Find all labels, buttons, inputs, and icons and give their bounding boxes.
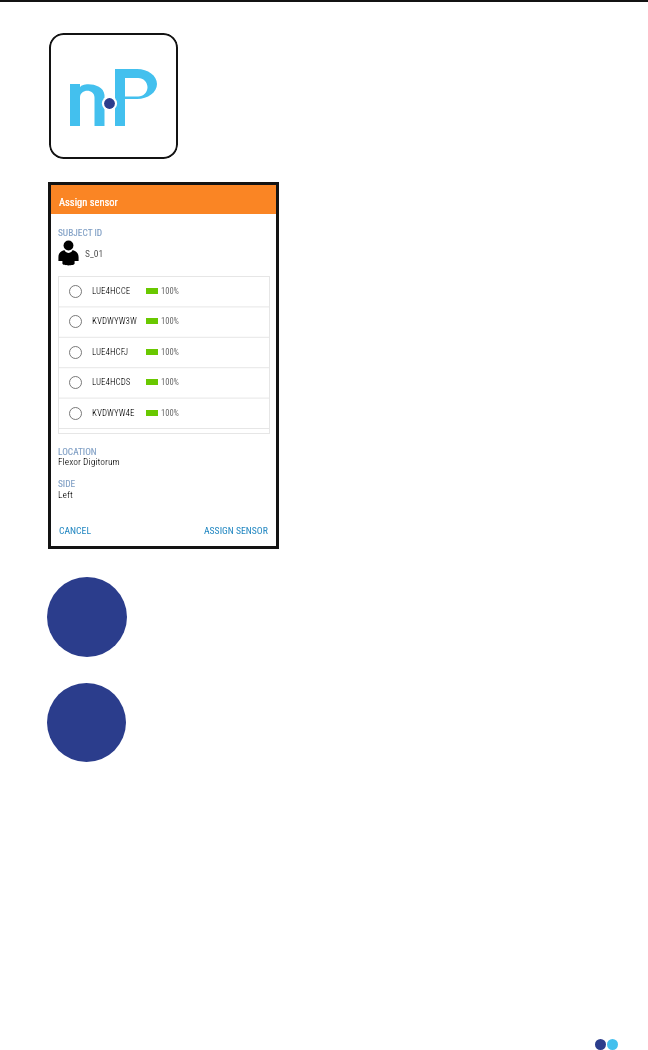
staticText: 100% — [161, 286, 179, 296]
button[interactable]: LUE4HCCE — [58, 276, 270, 306]
staticText: 100% — [161, 377, 179, 387]
button[interactable]: LUE4HCFJ — [58, 337, 270, 367]
staticText: 100% — [161, 347, 179, 357]
staticText: Flexor Digitorum — [58, 456, 120, 467]
staticText: ASSIGN SENSOR — [204, 525, 268, 536]
button[interactable]: KVDWYW4E — [58, 398, 270, 428]
staticText: LUE4HCCE — [92, 286, 131, 297]
staticText: KVDWYW4E — [92, 408, 135, 419]
staticText: LUE4HCFJ — [92, 347, 129, 358]
staticText: Assign sensor — [59, 196, 118, 208]
staticText: S_01 — [85, 248, 104, 259]
staticText: KVDWYW3W — [92, 316, 137, 327]
staticText: CANCEL — [59, 525, 91, 536]
button[interactable]: LUE4HCDS — [58, 367, 270, 397]
button[interactable]: App icon — [49, 33, 178, 159]
button[interactable]: Screenshot placeholder — [47, 577, 127, 657]
staticText: 100% — [161, 408, 179, 418]
button[interactable]: Screenshot placeholder — [47, 683, 126, 762]
staticText: 100% — [161, 316, 179, 326]
staticText: Left — [58, 489, 73, 500]
staticText: LOCATION — [58, 446, 97, 457]
staticText: SUBJECT ID — [58, 227, 103, 238]
button[interactable]: KVDWYW3W — [58, 306, 270, 336]
staticText: LUE4HCDS — [92, 377, 131, 388]
staticText: SIDE — [58, 478, 76, 489]
button[interactable]: CANCEL — [57, 523, 93, 538]
button[interactable]: ASSIGN SENSOR — [202, 523, 270, 538]
